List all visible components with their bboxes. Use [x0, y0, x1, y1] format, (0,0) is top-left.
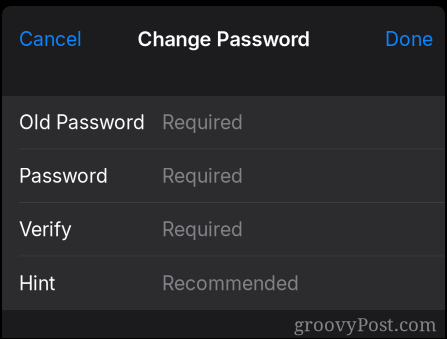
button[interactable]: Done	[373, 18, 445, 60]
button[interactable]: Old Password	[2, 96, 445, 149]
staticText: Old Password	[19, 111, 145, 134]
button[interactable]: Cancel	[2, 18, 94, 60]
staticText: Required	[162, 111, 243, 134]
staticText: Password	[19, 164, 108, 187]
button[interactable]: Password	[2, 149, 445, 203]
button[interactable]: Verify	[2, 203, 445, 256]
staticText: Recommended	[162, 272, 299, 295]
staticText: Verify	[19, 218, 72, 241]
staticText: Hint	[19, 272, 55, 295]
staticText: Required	[162, 164, 243, 187]
staticText: Done	[385, 27, 433, 51]
staticText: groovyPost.com	[294, 311, 437, 337]
button[interactable]: Hint	[2, 256, 445, 310]
staticText: Required	[162, 218, 243, 241]
staticText: Change Password	[137, 27, 309, 51]
staticText: Cancel	[19, 27, 82, 51]
